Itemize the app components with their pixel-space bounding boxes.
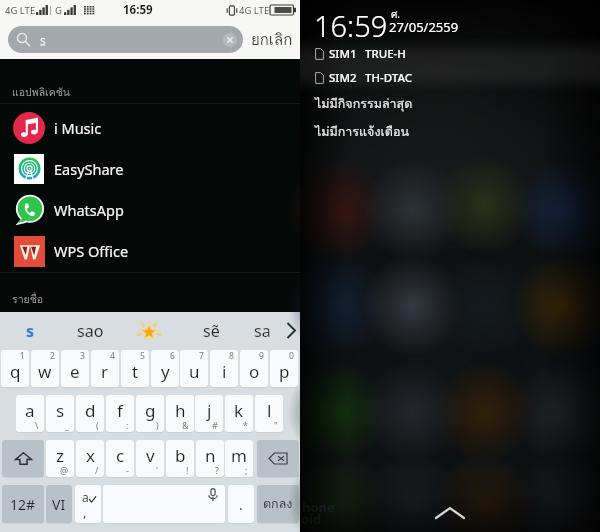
staticText: l	[267, 399, 272, 422]
button[interactable]: Shift	[2, 440, 44, 477]
staticText: ตกลง	[263, 494, 293, 514]
button[interactable]: p	[270, 350, 298, 387]
staticText: i Music	[54, 118, 102, 138]
button[interactable]: s	[8, 26, 243, 53]
staticText: s	[40, 32, 46, 48]
staticText: ไม่มีกิจกรรมล่าสุด	[315, 94, 413, 114]
button[interactable]: WhatsApp	[0, 189, 300, 230]
staticText: 12#	[10, 495, 36, 514]
button[interactable]: d	[76, 395, 104, 432]
staticText: 2	[50, 350, 55, 362]
staticText: 27/05/2559	[389, 18, 459, 36]
staticText: s	[26, 320, 35, 342]
button[interactable]: l	[255, 395, 283, 432]
button[interactable]: a	[16, 395, 44, 432]
button[interactable]: More suggestions	[281, 312, 300, 349]
staticText: s	[56, 399, 65, 422]
staticText: ,	[83, 503, 87, 521]
staticText: _	[65, 419, 69, 431]
button[interactable]: s	[46, 395, 74, 432]
button[interactable]: i Music	[0, 107, 300, 148]
button[interactable]: VI	[46, 485, 72, 523]
staticText: WPS Office	[54, 241, 129, 261]
staticText: ?	[215, 464, 219, 476]
staticText: /	[95, 464, 99, 476]
staticText: q	[10, 360, 21, 383]
staticText: ;	[245, 464, 248, 476]
button[interactable]: w	[31, 350, 59, 387]
button[interactable]: j	[195, 395, 223, 432]
button[interactable]: g	[136, 395, 164, 432]
staticText: w	[38, 360, 52, 383]
staticText: p	[279, 360, 290, 383]
button[interactable]: s	[8, 312, 53, 349]
staticText: SIM1	[329, 46, 357, 62]
button[interactable]: sa	[240, 312, 284, 349]
button[interactable]: SIM1	[300, 43, 600, 64]
staticText: t	[132, 360, 139, 383]
button[interactable]: o	[240, 350, 268, 387]
staticText: 4G LTE	[5, 4, 36, 17]
button[interactable]: ตกลง	[257, 485, 299, 523]
staticText: oid	[301, 510, 322, 528]
button[interactable]: ยกเลิก	[243, 26, 300, 53]
staticText: o	[249, 360, 260, 383]
staticText: b	[175, 444, 186, 467]
staticText: 1	[20, 350, 25, 362]
button[interactable]: v	[136, 440, 164, 477]
button[interactable]: EasyShare	[0, 148, 300, 189]
staticText: 8	[229, 350, 234, 362]
staticText: z	[56, 444, 64, 467]
button[interactable]: 12#	[2, 485, 44, 523]
staticText: x	[86, 444, 95, 467]
button[interactable]: n	[196, 440, 224, 477]
button[interactable]: Space	[103, 485, 225, 523]
staticText: รายชื่อ	[12, 291, 44, 308]
button[interactable]: y	[151, 350, 179, 387]
button[interactable]: q	[1, 350, 29, 387]
staticText: hone	[302, 498, 335, 516]
staticText: i	[222, 360, 227, 383]
staticText: WhatsApp	[54, 200, 124, 220]
staticText: SIM2	[329, 70, 357, 86]
button[interactable]: b	[166, 440, 194, 477]
button[interactable]: z	[46, 440, 74, 477]
staticText: -	[126, 464, 129, 476]
staticText: 16:59	[123, 2, 153, 18]
staticText: sẽ	[203, 320, 220, 342]
button[interactable]: f	[106, 395, 134, 432]
button[interactable]: u	[180, 350, 208, 387]
button[interactable]: e	[61, 350, 89, 387]
button[interactable]: Collapse	[427, 501, 473, 525]
button[interactable]: .	[228, 485, 254, 523]
staticText: :	[126, 419, 129, 431]
button[interactable]: k	[225, 395, 253, 432]
button[interactable]: Clear	[223, 33, 237, 47]
button[interactable]	[125, 312, 173, 349]
button[interactable]: t	[121, 350, 149, 387]
staticText: #	[212, 419, 218, 431]
staticText: k	[234, 399, 244, 422]
button[interactable]: sao	[62, 312, 118, 349]
button[interactable]: WPS Office	[0, 230, 300, 271]
button[interactable]: r	[91, 350, 119, 387]
staticText: sa	[254, 320, 271, 342]
staticText: &	[182, 419, 189, 431]
staticText: !	[186, 464, 189, 476]
staticText: 6	[170, 350, 175, 362]
button[interactable]: x	[76, 440, 104, 477]
staticText: a	[82, 489, 89, 505]
button[interactable]: Backspace	[257, 440, 299, 477]
staticText: n	[205, 444, 216, 467]
button[interactable]: Input method	[75, 485, 101, 523]
staticText: f	[117, 399, 123, 422]
staticText: )	[156, 419, 159, 431]
button[interactable]: h	[166, 395, 194, 432]
staticText: @	[60, 464, 69, 476]
button[interactable]: SIM2	[300, 67, 600, 88]
button[interactable]: c	[106, 440, 134, 477]
button[interactable]: sẽ	[185, 312, 237, 349]
button[interactable]: i	[210, 350, 238, 387]
staticText: VI	[52, 495, 66, 514]
button[interactable]: m	[225, 440, 253, 477]
